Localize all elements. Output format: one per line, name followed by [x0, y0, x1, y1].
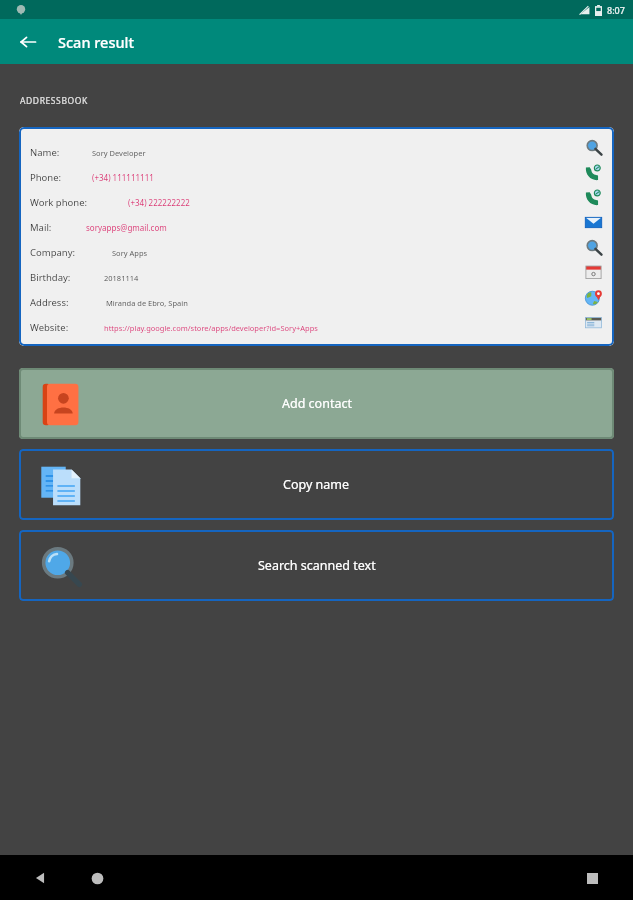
- staticText: Miranda de Ebro, Spain: [106, 298, 188, 308]
- button[interactable]: Search scanned text: [19, 530, 614, 601]
- staticText: Company:: [30, 246, 112, 259]
- staticText: ADDRESSBOOK: [20, 95, 88, 107]
- staticText: Phone:: [30, 171, 92, 184]
- button[interactable]: Search name: [581, 135, 606, 160]
- staticText: 8:07: [607, 4, 625, 16]
- staticText: Search scanned text: [258, 557, 376, 574]
- button[interactable]: Call phone: [581, 160, 606, 185]
- staticText: Mail:: [30, 221, 86, 234]
- staticText: Add contact: [282, 395, 352, 412]
- button[interactable]: Call work phone: [581, 185, 606, 210]
- button[interactable]: Copy name: [19, 449, 614, 520]
- button[interactable]: Back: [13, 27, 43, 57]
- staticText: Address:: [30, 296, 106, 309]
- staticText: Scan result: [58, 32, 135, 52]
- button[interactable]: Add birthday: [581, 260, 606, 285]
- staticText: (+34) 222222222: [128, 197, 190, 208]
- button[interactable]: Open map: [581, 285, 606, 310]
- staticText: Work phone:: [30, 196, 128, 209]
- staticText: 20181114: [104, 273, 139, 283]
- staticText: soryapps@gmail.com: [86, 222, 167, 233]
- button[interactable]: Recent apps: [575, 861, 609, 895]
- staticText: Sory Developer: [92, 148, 146, 158]
- staticText: Sory Apps: [112, 248, 148, 258]
- staticText: Name:: [30, 146, 92, 159]
- button[interactable]: Name:: [19, 127, 614, 346]
- button[interactable]: Open website: [581, 310, 606, 335]
- staticText: Birthday:: [30, 271, 104, 284]
- button[interactable]: Send mail: [581, 210, 606, 235]
- button[interactable]: Search company: [581, 235, 606, 260]
- staticText: Copy name: [283, 476, 350, 493]
- button[interactable]: Add contact: [19, 368, 614, 439]
- button[interactable]: Home: [80, 861, 114, 895]
- button[interactable]: Back: [24, 861, 58, 895]
- staticText: Website:: [30, 321, 104, 334]
- staticText: (+34) 111111111: [92, 172, 154, 183]
- staticText: https://play.google.com/store/apps/devel…: [104, 323, 318, 333]
